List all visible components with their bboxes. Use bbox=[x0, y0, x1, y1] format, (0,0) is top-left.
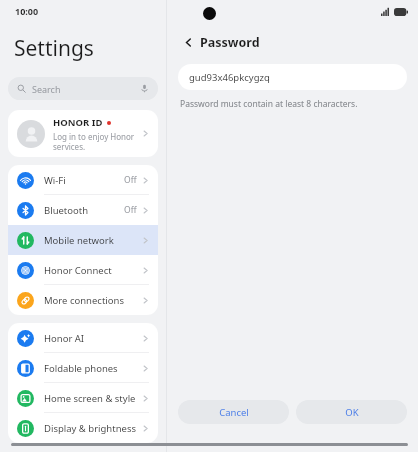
button[interactable]: gud93x46pkcygzq bbox=[178, 64, 407, 90]
staticText: Cancel bbox=[219, 406, 249, 419]
button[interactable]: Home screen & style bbox=[8, 383, 158, 413]
staticText: Mobile network bbox=[44, 234, 114, 247]
button[interactable]: Honor Connect bbox=[8, 255, 158, 285]
button[interactable]: Cancel bbox=[178, 400, 289, 424]
staticText: Off bbox=[124, 204, 137, 216]
button[interactable]: Bluetooth bbox=[8, 195, 158, 225]
staticText: Password must contain at least 8 charact… bbox=[180, 98, 358, 110]
button[interactable]: Back bbox=[179, 33, 197, 51]
staticText: HONOR ID bbox=[53, 116, 103, 129]
staticText: Log in to enjoy Honor services. bbox=[53, 131, 135, 152]
staticText: Honor Connect bbox=[44, 264, 112, 277]
button[interactable]: OK bbox=[296, 400, 407, 424]
staticText: More connections bbox=[44, 294, 124, 307]
button[interactable]: Search bbox=[8, 77, 158, 100]
button[interactable]: More connections bbox=[8, 285, 158, 315]
staticText: Search bbox=[32, 83, 61, 95]
button[interactable]: HONOR ID bbox=[8, 110, 158, 157]
staticText: Foldable phones bbox=[44, 362, 118, 375]
staticText: Password bbox=[200, 34, 260, 51]
staticText: Home screen & style bbox=[44, 392, 136, 405]
button[interactable]: Wi-Fi bbox=[8, 165, 158, 195]
button[interactable]: Foldable phones bbox=[8, 353, 158, 383]
staticText: Off bbox=[124, 174, 137, 186]
staticText: Honor AI bbox=[44, 332, 85, 345]
staticText: 10:00 bbox=[15, 5, 39, 17]
staticText: Wi-Fi bbox=[44, 174, 66, 187]
staticText: Settings bbox=[14, 34, 94, 63]
button[interactable]: Honor AI bbox=[8, 323, 158, 353]
staticText: Display & brightness bbox=[44, 422, 136, 435]
staticText: OK bbox=[345, 406, 359, 419]
staticText: gud93x46pkcygzq bbox=[189, 71, 270, 84]
button[interactable]: Mobile network bbox=[8, 225, 158, 255]
staticText: Bluetooth bbox=[44, 204, 89, 217]
button[interactable]: Display & brightness bbox=[8, 413, 158, 443]
